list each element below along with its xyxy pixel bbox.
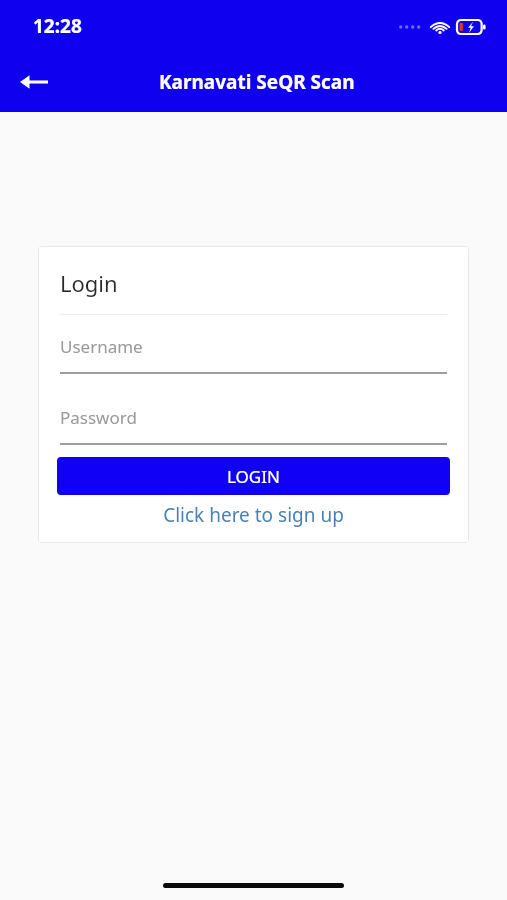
- button[interactable]: Click here to sign up: [38, 495, 469, 535]
- staticText: Username: [60, 335, 143, 358]
- button[interactable]: Username: [60, 335, 447, 374]
- staticText: Password: [60, 406, 137, 429]
- button[interactable]: Back: [10, 58, 58, 106]
- staticText: Click here to sign up: [163, 502, 344, 528]
- staticText: 12:28: [33, 13, 82, 39]
- button[interactable]: LOGIN: [57, 457, 450, 495]
- staticText: Login: [60, 268, 118, 298]
- staticText: LOGIN: [227, 465, 280, 488]
- staticText: Karnavati SeQR Scan: [159, 69, 355, 95]
- button[interactable]: Password: [60, 406, 447, 445]
